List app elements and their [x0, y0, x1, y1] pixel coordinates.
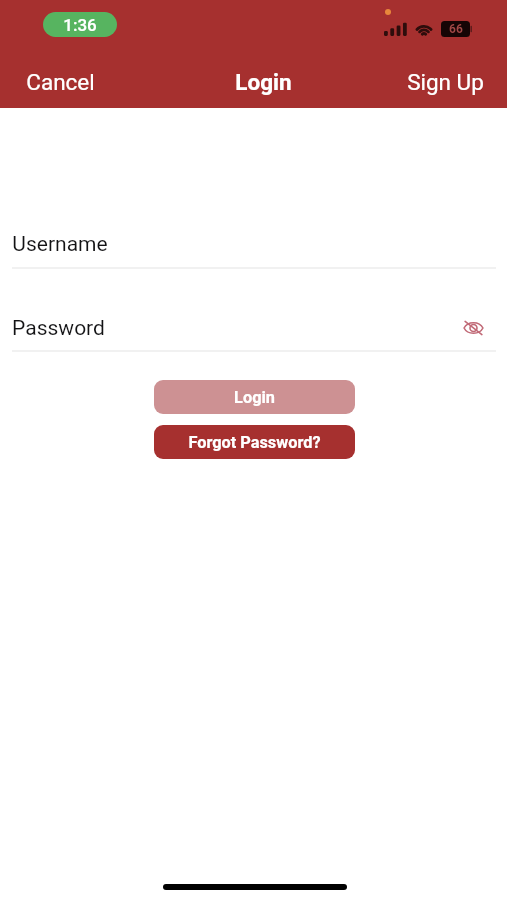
button[interactable]: Username: [0, 232, 507, 262]
other: Cellular signal: [384, 23, 407, 36]
button[interactable]: Password: [0, 316, 507, 346]
staticText: Login: [234, 388, 275, 407]
other: Wi-Fi: [415, 22, 433, 36]
staticText: Cancel: [26, 69, 95, 95]
other: Battery 66 percent: [441, 21, 472, 37]
staticText: 1:36: [63, 15, 97, 35]
staticText: 66: [449, 22, 463, 36]
staticText: Username: [12, 232, 108, 257]
button[interactable]: Forgot Password?: [154, 425, 355, 459]
other: Microphone in use: [385, 9, 391, 15]
staticText: Login: [235, 69, 292, 95]
staticText: Password: [12, 316, 105, 341]
staticText: Sign Up: [407, 69, 484, 95]
button[interactable]: Cancel: [12, 64, 109, 100]
button[interactable]: Sign Up: [393, 64, 498, 100]
button[interactable]: Login: [154, 380, 355, 414]
button[interactable]: Show password: [459, 314, 487, 342]
staticText: Forgot Password?: [188, 433, 321, 452]
